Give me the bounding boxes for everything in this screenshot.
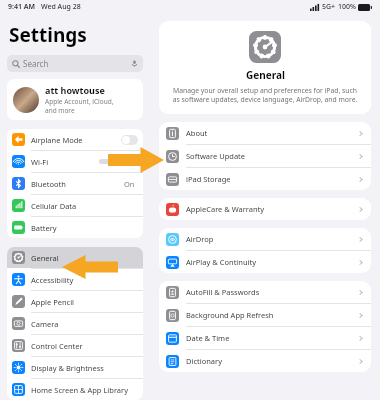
button[interactable]: iPad Storage — [159, 168, 371, 190]
staticText: About — [186, 128, 208, 138]
button[interactable]: Airplane Mode — [7, 129, 143, 150]
staticText: Control Center — [31, 341, 83, 351]
staticText: AirDrop — [186, 234, 214, 244]
button[interactable]: Battery — [7, 217, 143, 238]
button[interactable]: AirPlay & Continuity — [159, 251, 371, 273]
button[interactable]: General — [7, 247, 143, 268]
staticText: Background App Refresh — [186, 310, 274, 320]
staticText: Bluetooth — [31, 179, 66, 189]
staticText: Software Update — [186, 151, 246, 161]
button[interactable]: Apple Pencil — [7, 291, 143, 312]
staticText: General — [31, 253, 59, 263]
button[interactable]: AppleCare & Warranty — [159, 198, 371, 220]
staticText: att howtouse — [45, 84, 105, 96]
staticText: Manage your overall setup and preference… — [169, 86, 361, 104]
button[interactable]: Search — [7, 55, 143, 72]
button[interactable]: Date & Time — [159, 327, 371, 349]
staticText: Accessibility — [31, 275, 74, 285]
staticText: Cellular Data — [31, 201, 77, 211]
button[interactable]: Background App Refresh — [159, 304, 371, 326]
button[interactable]: att howtouse — [7, 79, 143, 120]
button[interactable]: Display & Brightness — [7, 357, 143, 378]
staticText: Wed Aug 28 — [41, 2, 81, 12]
staticText: Camera — [31, 319, 59, 329]
staticText: Home Screen & App Library — [31, 385, 128, 395]
button[interactable]: Accessibility — [7, 269, 143, 290]
button[interactable]: Home Screen & App Library — [7, 379, 143, 400]
staticText: AppleCare & Warranty — [186, 204, 265, 214]
staticText: Battery — [31, 223, 57, 233]
staticText: Search — [23, 58, 49, 69]
staticText: 5G+ — [322, 2, 336, 12]
button[interactable]: Camera — [7, 313, 143, 334]
staticText: Display & Brightness — [31, 363, 104, 373]
button[interactable]: Wi-Fi — [7, 151, 143, 172]
staticText: Dictionary — [186, 356, 222, 366]
staticText: and more — [45, 106, 75, 115]
button[interactable]: About — [159, 122, 371, 144]
staticText: AirPlay & Continuity — [186, 257, 257, 267]
staticText: Wi-Fi — [31, 157, 49, 167]
staticText: Apple Account, iCloud, — [45, 97, 114, 106]
staticText: 100% — [338, 2, 356, 12]
button[interactable]: Control Center — [7, 335, 143, 356]
button[interactable]: Cellular Data — [7, 195, 143, 216]
staticText: On — [124, 179, 135, 189]
staticText: Settings — [9, 22, 87, 48]
button[interactable]: AirDrop — [159, 228, 371, 250]
staticText: 9:41 AM — [8, 2, 35, 12]
staticText: iPad Storage — [186, 174, 231, 184]
staticText: Apple Pencil — [31, 297, 75, 307]
button[interactable]: Dictionary — [159, 350, 371, 372]
staticText: Airplane Mode — [31, 135, 83, 145]
button[interactable]: AutoFill & Passwords — [159, 281, 371, 303]
button[interactable]: Bluetooth — [7, 173, 143, 194]
staticText: Date & Time — [186, 333, 230, 343]
staticText: General — [246, 68, 285, 82]
button[interactable]: Software Update — [159, 145, 371, 167]
staticText: AutoFill & Passwords — [186, 287, 260, 297]
